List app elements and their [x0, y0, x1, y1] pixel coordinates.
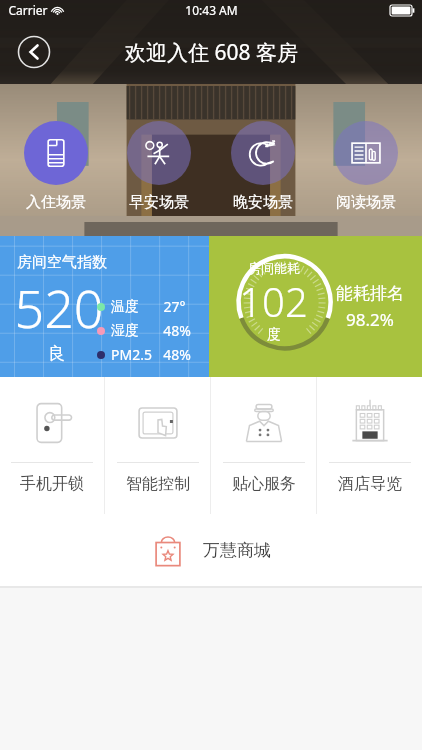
button[interactable]: 房间能耗: [209, 236, 422, 377]
staticText: 房间能耗: [248, 260, 300, 276]
staticText: 520: [14, 272, 104, 343]
staticText: 万慧商城: [203, 540, 271, 561]
staticText: 良: [48, 343, 65, 364]
staticText: 房间空气指数: [17, 253, 107, 272]
staticText: 能耗排名: [336, 283, 404, 304]
button[interactable]: 晚安场景: [215, 121, 311, 212]
button[interactable]: 万慧商城: [151, 533, 271, 567]
staticText: 27°: [163, 297, 186, 316]
button[interactable]: 智能控制: [105, 377, 210, 514]
staticText: PM2.5: [111, 345, 152, 364]
staticText: 贴心服务: [232, 474, 296, 494]
button[interactable]: 酒店导览: [317, 377, 422, 514]
staticText: 酒店导览: [338, 474, 402, 494]
staticText: 早安场景: [129, 193, 189, 212]
button[interactable]: Back: [16, 34, 52, 70]
button[interactable]: 贴心服务: [211, 377, 316, 514]
button[interactable]: 阅读场景: [318, 121, 414, 212]
button[interactable]: 早安场景: [111, 121, 207, 212]
staticText: Carrier: [8, 2, 48, 18]
staticText: 欢迎入住 608 客房: [125, 38, 298, 67]
staticText: 102: [239, 274, 308, 328]
button[interactable]: 入住场景: [8, 121, 104, 212]
staticText: 98.2%: [346, 308, 394, 331]
button[interactable]: 手机开锁: [0, 377, 104, 514]
staticText: 10:43 AM: [185, 2, 238, 18]
staticText: 48%: [163, 321, 191, 340]
staticText: 度: [267, 326, 281, 344]
staticText: 湿度: [111, 322, 139, 340]
staticText: 入住场景: [26, 193, 86, 212]
staticText: 48%: [163, 345, 191, 364]
staticText: 阅读场景: [336, 193, 396, 212]
staticText: 晚安场景: [233, 193, 293, 212]
staticText: 手机开锁: [20, 474, 84, 494]
staticText: 温度: [111, 298, 139, 316]
staticText: 智能控制: [126, 474, 190, 494]
button[interactable]: 房间空气指数: [0, 236, 209, 377]
